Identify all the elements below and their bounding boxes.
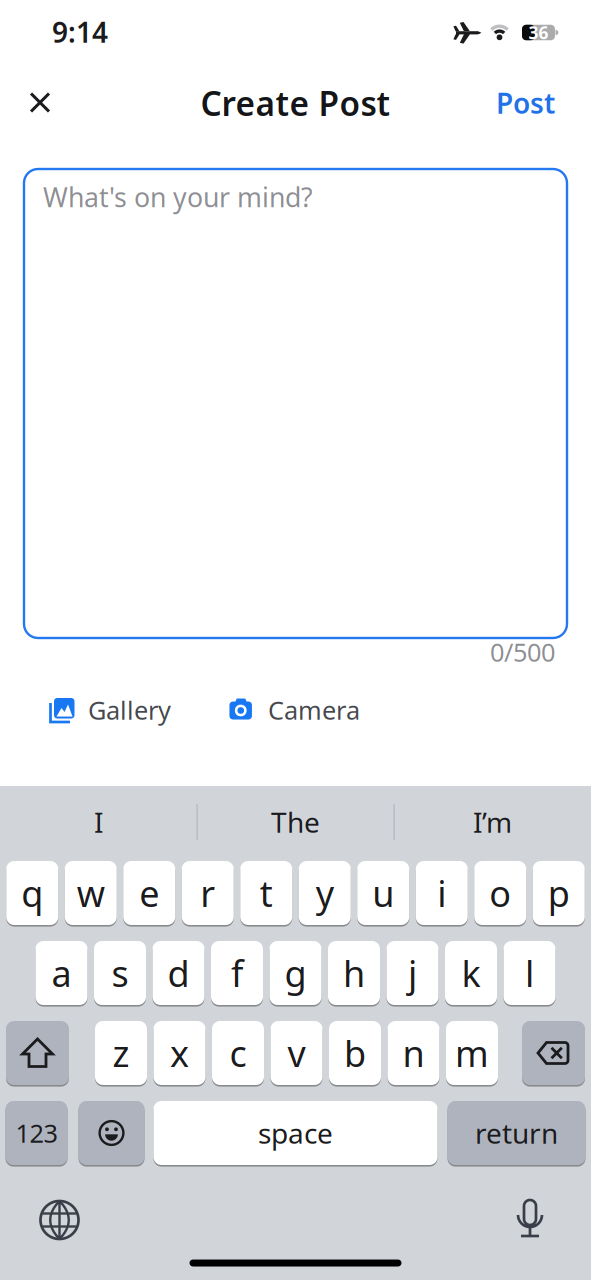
- staticText: return: [475, 1114, 558, 1152]
- staticText: m: [455, 1029, 489, 1077]
- button[interactable]: Camera: [226, 693, 360, 727]
- button[interactable]: x: [153, 1021, 205, 1085]
- staticText: x: [170, 1029, 189, 1077]
- staticText: d: [167, 949, 189, 997]
- staticText: e: [139, 869, 159, 917]
- button[interactable]: r: [182, 861, 234, 925]
- staticText: c: [229, 1029, 246, 1077]
- button[interactable]: s: [94, 941, 146, 1005]
- button[interactable]: f: [211, 941, 263, 1005]
- button[interactable]: Shift: [6, 1021, 69, 1085]
- button[interactable]: e: [123, 861, 175, 925]
- staticText: Camera: [268, 693, 360, 727]
- staticText: k: [461, 949, 480, 997]
- staticText: I: [94, 803, 103, 841]
- staticText: s: [111, 949, 128, 997]
- staticText: t: [260, 869, 273, 917]
- staticText: b: [344, 1029, 366, 1077]
- button[interactable]: I’m: [397, 793, 587, 851]
- staticText: Gallery: [88, 693, 171, 727]
- button[interactable]: z: [95, 1021, 147, 1085]
- staticText: I’m: [473, 803, 512, 841]
- staticText: q: [21, 869, 43, 917]
- staticText: Post: [496, 84, 555, 122]
- button[interactable]: Post: [496, 84, 555, 122]
- staticText: f: [231, 949, 243, 997]
- staticText: 0/500: [490, 635, 555, 669]
- button[interactable]: d: [152, 941, 204, 1005]
- button[interactable]: 123: [5, 1101, 67, 1165]
- staticText: 123: [15, 1116, 57, 1150]
- button[interactable]: i: [416, 861, 468, 925]
- staticText: l: [525, 949, 534, 997]
- button[interactable]: space: [153, 1101, 437, 1165]
- button[interactable]: q: [6, 861, 58, 925]
- button[interactable]: Dictate: [508, 1198, 552, 1242]
- button[interactable]: o: [474, 861, 526, 925]
- button[interactable]: Close: [0, 0, 591, 1280]
- button[interactable]: t: [240, 861, 292, 925]
- button[interactable]: c: [212, 1021, 264, 1085]
- button[interactable]: h: [328, 941, 380, 1005]
- button[interactable]: Emoji: [78, 1101, 144, 1165]
- button[interactable]: l: [503, 941, 555, 1005]
- button[interactable]: u: [357, 861, 409, 925]
- button[interactable]: Gallery: [46, 693, 171, 727]
- staticText: j: [408, 949, 417, 997]
- button[interactable]: w: [65, 861, 117, 925]
- staticText: 36: [528, 21, 548, 44]
- button[interactable]: b: [329, 1021, 381, 1085]
- button[interactable]: y: [299, 861, 351, 925]
- staticText: 9:14: [52, 13, 108, 51]
- staticText: n: [402, 1029, 424, 1077]
- button[interactable]: Delete: [522, 1021, 585, 1085]
- staticText: y: [316, 869, 334, 917]
- staticText: space: [258, 1114, 333, 1152]
- staticText: v: [287, 1029, 305, 1077]
- staticText: The: [271, 803, 320, 841]
- button[interactable]: The: [200, 793, 390, 851]
- staticText: h: [343, 949, 365, 997]
- button[interactable]: n: [387, 1021, 439, 1085]
- button[interactable]: return: [447, 1101, 585, 1165]
- button[interactable]: I: [3, 793, 193, 851]
- button[interactable]: a: [35, 941, 87, 1005]
- staticText: w: [77, 869, 105, 917]
- button[interactable]: Next keyboard: [37, 1198, 81, 1242]
- staticText: i: [437, 869, 446, 917]
- staticText: r: [200, 869, 215, 917]
- staticText: a: [51, 949, 71, 997]
- button[interactable]: g: [269, 941, 321, 1005]
- button[interactable]: p: [533, 861, 585, 925]
- staticText: o: [489, 869, 511, 917]
- staticText: Create Post: [200, 81, 390, 125]
- staticText: What's on your mind?: [43, 179, 313, 215]
- button[interactable]: j: [386, 941, 438, 1005]
- staticText: p: [548, 869, 570, 917]
- button[interactable]: k: [445, 941, 497, 1005]
- button[interactable]: m: [446, 1021, 498, 1085]
- staticText: u: [372, 869, 394, 917]
- staticText: g: [284, 949, 306, 997]
- staticText: z: [112, 1029, 129, 1077]
- button[interactable]: v: [270, 1021, 322, 1085]
